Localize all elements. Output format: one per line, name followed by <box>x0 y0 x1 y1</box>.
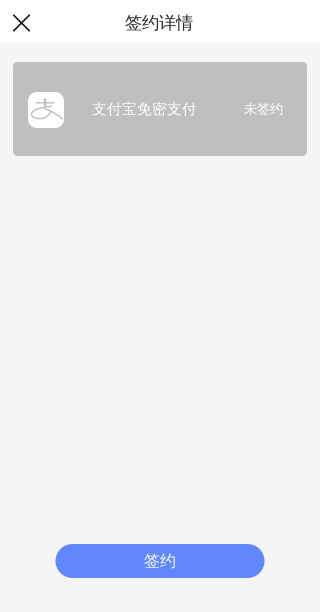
button[interactable]: 支付宝免密支付 <box>0 43 320 156</box>
button[interactable]: Close <box>0 0 43 44</box>
staticText: 支付宝免密支付 <box>92 100 197 118</box>
staticText: 签约 <box>144 551 176 571</box>
staticText: 签约详情 <box>125 12 193 34</box>
button[interactable]: 签约 <box>55 544 264 578</box>
staticText: 未签约 <box>244 101 283 117</box>
